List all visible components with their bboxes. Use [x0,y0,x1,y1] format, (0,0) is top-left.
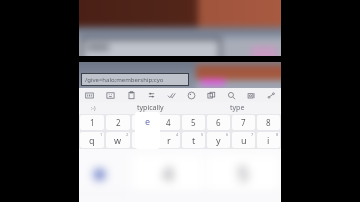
staticText: 4 [176,132,179,137]
button[interactable]: r [157,132,180,148]
button[interactable]: Sticker [100,88,121,102]
staticText: 6 [216,117,221,128]
button[interactable]: Emoji [79,102,107,114]
button[interactable]: Translate [141,88,161,102]
button[interactable]: q [80,132,104,148]
button[interactable]: Share [261,88,281,102]
staticText: 4 [166,117,171,128]
staticText: 2 [126,132,129,137]
staticText: i [267,134,270,146]
staticText: e [145,115,151,127]
staticText: q [89,134,95,146]
button[interactable]: typically [107,102,194,114]
staticText: w [114,134,122,146]
button[interactable]: w [106,132,130,148]
staticText: 5 [201,132,204,137]
staticText: 2 [116,117,121,128]
staticText: t [192,134,196,146]
button[interactable]: 3 [132,115,155,130]
button[interactable]: Spell check [161,88,181,102]
button[interactable]: y [207,132,230,148]
staticText: type [230,103,245,113]
button[interactable]: 8 [257,115,280,130]
button[interactable]: type [194,102,281,114]
staticText: 3 [141,117,146,128]
staticText: :-) [91,105,96,112]
staticText: typically [137,103,164,113]
staticText: 6 [226,132,229,137]
button[interactable]: 2 [106,115,130,130]
button[interactable]: 1 [80,115,104,130]
staticText: 5 [191,117,196,128]
button[interactable]: Search [201,88,221,102]
button[interactable]: Clipboard [121,88,141,102]
staticText: 7 [241,117,246,128]
staticText: u [241,134,247,146]
staticText: 1 [90,117,95,128]
button[interactable]: 6 [207,115,230,130]
staticText: y [216,134,221,146]
button[interactable]: e [135,112,160,149]
button[interactable]: Voice [241,88,261,102]
button[interactable]: 7 [232,115,255,130]
staticText: 7 [251,132,254,137]
staticText: 4 [162,160,174,187]
staticText: 8 [276,132,279,137]
button[interactable]: Settings [221,88,241,102]
button[interactable]: 4 [157,115,180,130]
staticText: 1 [100,132,103,137]
button[interactable]: Theme [181,88,201,102]
staticText: 5 [237,160,249,187]
button[interactable]: /give=halo;membership;cyo [81,73,189,86]
staticText: 8 [266,117,271,128]
button[interactable]: i [257,132,280,148]
button[interactable]: 5 [182,115,205,130]
staticText: r [167,134,171,146]
button[interactable]: u [232,132,255,148]
staticText: /give=halo;membership;cyo [85,76,164,84]
button[interactable]: GIF [79,88,100,102]
button[interactable]: t [182,132,205,148]
